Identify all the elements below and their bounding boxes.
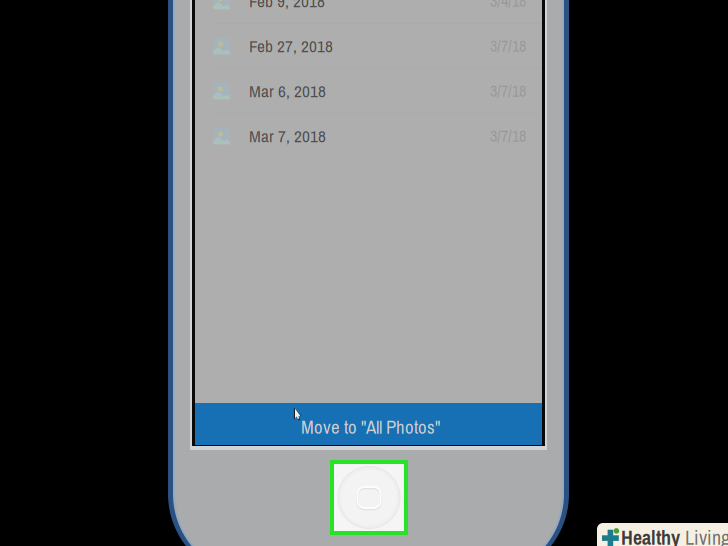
button[interactable]: Feb 9, 2018 [195,0,542,23]
staticText: Mar 6, 2018 [249,79,326,103]
staticText: Move to "All Photos" [301,414,440,439]
staticText: Feb 27, 2018 [249,34,333,58]
staticText: 3/4/18 [490,0,526,12]
staticText: Healthy [621,524,680,546]
staticText: Living [680,524,728,546]
button[interactable]: Feb 27, 2018 [195,24,542,68]
button[interactable]: Home [330,460,408,535]
staticText: 3/7/18 [490,125,526,147]
staticText: 3/7/18 [490,80,526,102]
button[interactable]: Mar 6, 2018 [195,69,542,113]
staticText: Mar 7, 2018 [249,124,326,148]
button[interactable]: Move to "All Photos" [195,403,542,445]
staticText: 3/7/18 [490,35,526,57]
staticText: Feb 9, 2018 [249,0,325,13]
button[interactable]: Mar 7, 2018 [195,114,542,158]
